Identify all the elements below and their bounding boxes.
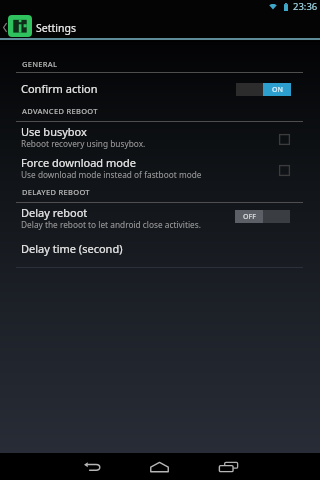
staticText: DELAYED REBOOT (22, 187, 90, 197)
staticText: Delay reboot (21, 205, 88, 220)
staticText: Confirm action (21, 81, 98, 96)
staticText: OFF (243, 212, 256, 222)
button[interactable]: Navigate up (0, 14, 9, 41)
button[interactable]: Toggle checkbox (279, 134, 290, 145)
staticText: Delay the reboot to let android close ac… (21, 219, 201, 230)
button[interactable]: Delay time (second) (0, 235, 320, 261)
staticText: Use busybox (21, 124, 87, 139)
button[interactable]: Toggle checkbox (279, 165, 290, 176)
button[interactable]: Use busybox (0, 124, 320, 154)
button[interactable]: Force download mode (0, 155, 320, 185)
staticText: 23:36 (293, 0, 318, 13)
staticText: Settings (36, 21, 76, 35)
staticText: ADVANCED REBOOT (22, 106, 98, 116)
button[interactable]: Back (60, 453, 125, 480)
button[interactable]: Switch on (236, 83, 291, 96)
button[interactable]: Recent apps (196, 453, 261, 480)
staticText: GENERAL (22, 59, 58, 69)
staticText: Force download mode (21, 155, 136, 170)
button[interactable]: Confirm action (0, 76, 320, 100)
staticText: Delay time (second) (21, 241, 123, 256)
staticText: ON (272, 85, 283, 95)
staticText: Reboot recovery using busybox. (21, 138, 146, 149)
button[interactable]: Home (127, 453, 192, 480)
staticText: Use download mode instead of fastboot mo… (21, 169, 202, 180)
button[interactable]: Switch off (235, 210, 290, 223)
button[interactable]: Delay reboot (0, 205, 320, 235)
